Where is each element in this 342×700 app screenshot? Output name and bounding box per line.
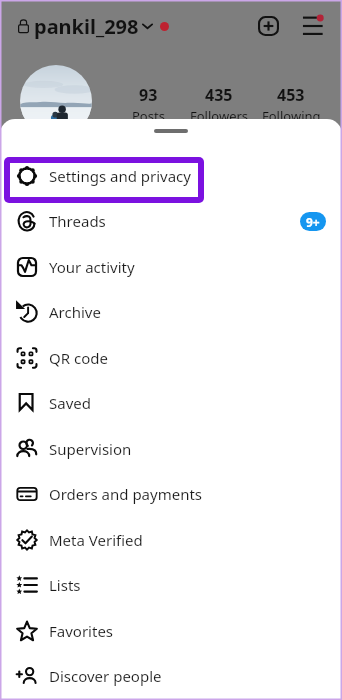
- button[interactable]: New post: [252, 10, 284, 42]
- button[interactable]: Threads: [0, 198, 342, 244]
- staticText: Orders and payments: [49, 484, 203, 504]
- staticText: Posts: [132, 107, 165, 125]
- staticText: Your activity: [49, 257, 135, 277]
- staticText: Supervision: [49, 439, 132, 459]
- button[interactable]: Discover people: [0, 653, 342, 699]
- button[interactable]: Saved: [0, 380, 342, 426]
- button[interactable]: Lists: [0, 562, 342, 608]
- staticText: Favorites: [49, 621, 114, 641]
- staticText: Threads: [49, 211, 106, 231]
- staticText: Saved: [49, 393, 91, 413]
- button[interactable]: [10, 163, 198, 197]
- staticText: 453: [277, 84, 305, 106]
- button[interactable]: Orders and payments: [0, 471, 342, 517]
- staticText: pankil_298: [34, 13, 139, 40]
- staticText: Settings and privacy: [49, 166, 191, 186]
- button[interactable]: Supervision: [0, 426, 342, 472]
- staticText: Discover people: [49, 666, 162, 686]
- staticText: Lists: [49, 575, 81, 595]
- button[interactable]: Favorites: [0, 608, 342, 654]
- button[interactable]: Your activity: [0, 244, 342, 290]
- button[interactable]: QR code: [0, 335, 342, 381]
- button[interactable]: Meta Verified: [0, 517, 342, 563]
- button[interactable]: Menu: [298, 10, 330, 42]
- staticText: 9+: [306, 214, 320, 230]
- staticText: 435: [205, 84, 233, 106]
- staticText: Meta Verified: [49, 530, 143, 550]
- staticText: 93: [139, 84, 158, 106]
- staticText: Followers: [190, 107, 249, 125]
- button[interactable]: Archive: [0, 289, 342, 335]
- staticText: Following: [262, 107, 321, 125]
- staticText: QR code: [49, 348, 108, 368]
- staticText: Archive: [49, 302, 101, 322]
